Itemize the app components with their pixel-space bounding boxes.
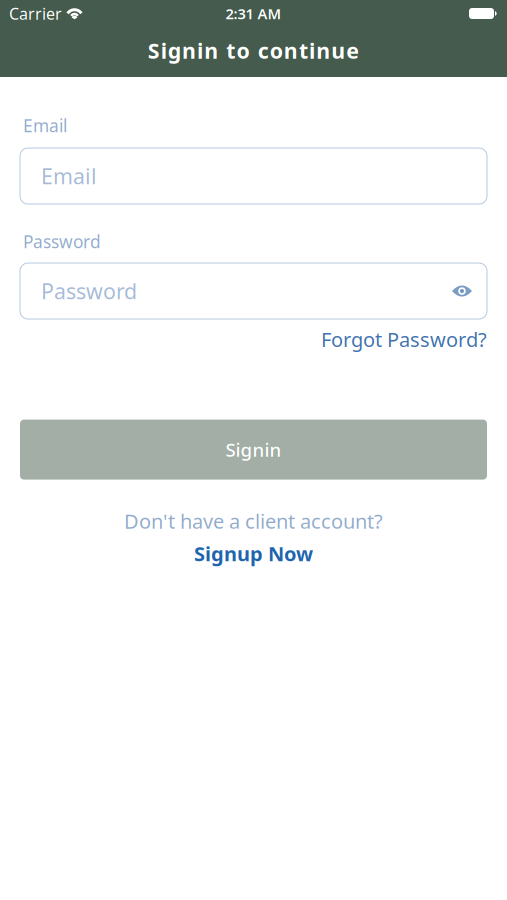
button[interactable]: Email [20,148,487,204]
staticText: Password [23,230,101,253]
staticText: Forgot Password? [321,326,487,353]
staticText: Signin to continue [148,36,359,65]
staticText: Signin [225,437,281,462]
button[interactable]: Signup Now [194,540,313,567]
staticText: Carrier [9,3,62,24]
staticText: Email [41,162,97,190]
button[interactable]: Password [20,263,487,319]
button[interactable]: Signin [20,420,487,480]
staticText: Email [23,114,67,137]
staticText: 2:31 AM [225,4,281,23]
staticText: Signup Now [194,540,313,567]
staticText: Don't have a client account? [124,508,383,534]
staticText: Password [41,277,137,305]
button[interactable]: Forgot Password? [321,326,487,353]
